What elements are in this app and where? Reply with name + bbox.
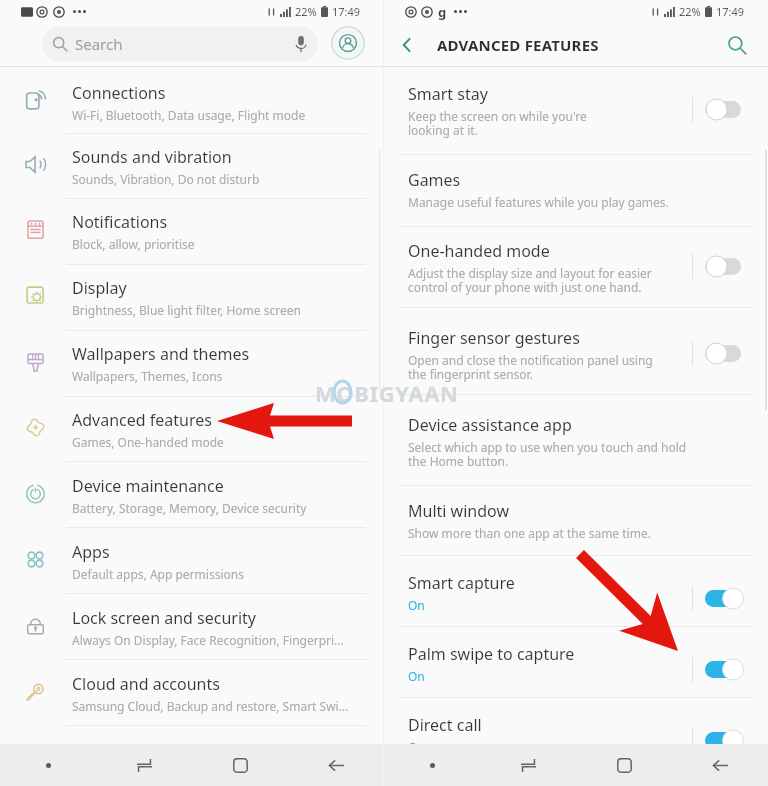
button[interactable]: Device maintenance bbox=[0, 469, 384, 521]
staticText: Games bbox=[408, 169, 461, 191]
button[interactable]: Search bbox=[42, 27, 318, 61]
staticText: MOBIGYAAN bbox=[315, 378, 459, 408]
staticText: 17:49 bbox=[716, 4, 745, 19]
staticText: Open and close the notification panel us… bbox=[408, 352, 653, 383]
staticText: Sounds, Vibration, Do not disturb bbox=[72, 171, 260, 187]
button[interactable]: Search bbox=[722, 30, 752, 60]
staticText: Advanced features bbox=[72, 409, 212, 431]
staticText: On bbox=[408, 739, 425, 755]
staticText: Manage useful features while you play ga… bbox=[408, 194, 669, 210]
button[interactable]: Cloud and accounts bbox=[0, 667, 384, 719]
button[interactable]: Finger sensor gestures bbox=[384, 327, 768, 383]
staticText: Adjust the display size and layout for e… bbox=[408, 265, 652, 296]
button[interactable]: Recents bbox=[96, 744, 192, 786]
staticText: 22% bbox=[295, 4, 317, 19]
staticText: One-handed mode bbox=[408, 240, 550, 262]
staticText: Games, One-handed mode bbox=[72, 434, 224, 450]
button[interactable]: Wallpapers and themes bbox=[0, 337, 384, 389]
button[interactable]: Back bbox=[392, 30, 422, 60]
staticText: Search bbox=[75, 34, 123, 54]
button[interactable]: Account bbox=[330, 26, 366, 60]
staticText: Direct call bbox=[408, 714, 482, 736]
staticText: Connections bbox=[72, 82, 166, 104]
staticText: 17:49 bbox=[332, 4, 361, 19]
staticText: Wallpapers and themes bbox=[72, 343, 250, 365]
button[interactable]: Toggle bbox=[705, 254, 754, 279]
staticText: Smart capture bbox=[408, 572, 515, 594]
staticText: Device assistance app bbox=[408, 414, 572, 436]
staticText: Always On Display, Face Recognition, Fin… bbox=[72, 632, 344, 648]
staticText: On bbox=[408, 597, 425, 613]
button[interactable]: Voice search bbox=[296, 27, 306, 61]
button[interactable]: Back bbox=[672, 744, 768, 786]
staticText: Display bbox=[72, 277, 127, 299]
button[interactable]: Sounds and vibration bbox=[0, 140, 384, 192]
button[interactable]: Home bbox=[192, 744, 288, 786]
button[interactable]: Notifications bbox=[0, 205, 384, 257]
staticText: Wallpapers, Themes, Icons bbox=[72, 368, 223, 384]
button[interactable]: Direct call bbox=[384, 714, 768, 770]
button[interactable]: Smart capture bbox=[384, 572, 768, 628]
button[interactable]: Palm swipe to capture bbox=[384, 643, 768, 699]
button[interactable]: Toggle bbox=[705, 728, 754, 753]
button[interactable]: Connections bbox=[0, 76, 384, 128]
staticText: Notifications bbox=[72, 211, 168, 233]
staticText: Select which app to use when you touch a… bbox=[408, 439, 687, 470]
staticText: Cloud and accounts bbox=[72, 673, 220, 695]
button[interactable]: Toggle bbox=[705, 97, 754, 122]
staticText: Smart stay bbox=[408, 83, 488, 105]
button[interactable]: Apps bbox=[0, 535, 384, 587]
staticText: Apps bbox=[72, 541, 110, 563]
button[interactable]: Recents bbox=[480, 744, 576, 786]
button[interactable]: Device assistance app bbox=[384, 414, 768, 470]
staticText: On bbox=[408, 668, 425, 684]
button[interactable]: Display bbox=[0, 271, 384, 323]
staticText: Show more than one app at the same time. bbox=[408, 525, 651, 541]
staticText: Default apps, App permissions bbox=[72, 566, 244, 582]
staticText: Battery, Storage, Memory, Device securit… bbox=[72, 500, 307, 516]
staticText: Sounds and vibration bbox=[72, 146, 232, 168]
button[interactable]: Smart stay bbox=[384, 83, 768, 139]
button[interactable]: Toggle bbox=[705, 341, 754, 366]
button[interactable]: One-handed mode bbox=[384, 240, 768, 296]
button[interactable]: Toggle bbox=[705, 657, 754, 682]
button[interactable]: Back bbox=[288, 744, 384, 786]
button[interactable]: Home bbox=[576, 744, 672, 786]
button[interactable]: Multi window bbox=[384, 500, 768, 556]
button[interactable]: Advanced features bbox=[0, 403, 384, 455]
staticText: Multi window bbox=[408, 500, 509, 522]
button[interactable]: Toggle bbox=[705, 586, 754, 611]
button[interactable]: Lock screen and security bbox=[0, 601, 384, 653]
staticText: Brightness, Blue light filter, Home scre… bbox=[72, 302, 301, 318]
staticText: Wi-Fi, Bluetooth, Data usage, Flight mod… bbox=[72, 107, 306, 123]
button[interactable]: Assistant bbox=[0, 744, 96, 786]
staticText: Keep the screen on while you're looking … bbox=[408, 108, 587, 139]
staticText: Palm swipe to capture bbox=[408, 643, 575, 665]
staticText: ADVANCED FEATURES bbox=[437, 35, 599, 55]
staticText: g bbox=[438, 3, 447, 21]
button[interactable]: Assistant bbox=[384, 744, 480, 786]
button[interactable]: Games bbox=[384, 169, 768, 225]
staticText: Block, allow, prioritise bbox=[72, 236, 195, 252]
staticText: Device maintenance bbox=[72, 475, 224, 497]
staticText: 22% bbox=[679, 4, 701, 19]
staticText: Samsung Cloud, Backup and restore, Smart… bbox=[72, 698, 349, 714]
staticText: Finger sensor gestures bbox=[408, 327, 580, 349]
staticText: Lock screen and security bbox=[72, 607, 256, 629]
